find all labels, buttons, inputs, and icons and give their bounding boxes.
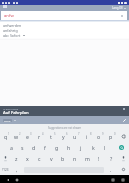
button[interactable]: Clear — [120, 14, 124, 18]
staticText: 6 — [66, 132, 68, 136]
button[interactable]: z — [11, 153, 22, 164]
staticText: s — [21, 144, 24, 151]
staticText: x — [26, 155, 29, 162]
staticText: Input — [4, 119, 11, 122]
staticText: abc Sofort — [3, 33, 21, 38]
button[interactable]: g — [51, 142, 63, 153]
button[interactable]: abc Sofort — [0, 33, 129, 38]
button[interactable]: v — [45, 153, 57, 164]
staticText: m — [85, 155, 90, 162]
staticText: , — [16, 166, 18, 173]
staticText: v — [50, 155, 53, 162]
staticText: l — [104, 144, 106, 151]
button[interactable]: , — [11, 164, 23, 175]
button[interactable]: Shift — [117, 153, 129, 164]
button[interactable]: r — [33, 131, 45, 142]
button[interactable]: m — [81, 153, 93, 164]
button[interactable]: j — [75, 142, 87, 153]
button[interactable]: i — [81, 131, 93, 142]
staticText: 9 — [102, 132, 104, 136]
staticText: anfwerden — [3, 23, 22, 28]
staticText: w — [14, 133, 19, 140]
staticText: ?123 — [2, 168, 9, 172]
button[interactable]: d — [28, 142, 39, 153]
button[interactable]: c — [33, 153, 45, 164]
button[interactable]: s — [17, 142, 28, 153]
staticText: anfahrtg — [3, 28, 18, 33]
staticText: o — [97, 133, 101, 140]
staticText: t — [50, 133, 52, 140]
staticText: 7 — [78, 132, 80, 136]
button[interactable]: a — [6, 142, 17, 153]
staticText: n — [73, 155, 77, 162]
staticText: f — [44, 144, 46, 151]
staticText: z — [15, 155, 18, 162]
button[interactable]: n — [69, 153, 81, 164]
staticText: b — [61, 155, 65, 162]
staticText: anfw — [4, 13, 14, 19]
staticText: k — [92, 144, 95, 151]
button[interactable]: Home — [15, 178, 18, 181]
staticText: p — [109, 133, 113, 140]
staticText: 2 — [19, 132, 21, 136]
staticText: u — [73, 133, 77, 140]
staticText: 8 — [90, 132, 92, 136]
staticText: g — [55, 144, 59, 151]
button[interactable]: anfwerden — [0, 23, 129, 28]
staticText: Suggestions are not shown — [48, 126, 82, 130]
button[interactable]: f — [39, 142, 51, 153]
button[interactable]: l — [99, 142, 111, 153]
button[interactable]: Recents — [111, 178, 114, 181]
button[interactable]: t — [45, 131, 57, 142]
button[interactable]: Back — [6, 178, 9, 181]
staticText: Artikel Name — [3, 107, 19, 110]
button[interactable]: x — [22, 153, 33, 164]
button[interactable]: p — [105, 131, 117, 142]
staticText: 0 — [114, 132, 116, 136]
button[interactable]: Edit — [122, 118, 126, 122]
staticText: r — [38, 133, 41, 140]
staticText: h — [67, 144, 71, 151]
staticText: ! — [98, 155, 100, 162]
staticText: j — [80, 144, 82, 151]
button[interactable]: q — [0, 131, 11, 142]
button[interactable]: Backspace — [117, 131, 129, 142]
button[interactable]: Emoji — [117, 164, 129, 175]
button[interactable]: ?123 — [0, 164, 11, 175]
button[interactable]: b — [57, 153, 69, 164]
staticText: d — [32, 144, 36, 151]
staticText: Auf Fahrplan — [3, 110, 29, 116]
staticText: 3 — [30, 132, 32, 136]
staticText: 1 — [8, 132, 10, 136]
button[interactable]: ! — [93, 153, 105, 164]
button[interactable]: k — [87, 142, 99, 153]
button[interactable]: Shift — [0, 153, 11, 164]
staticText: 4 — [42, 132, 44, 136]
staticText: y — [62, 133, 65, 140]
button[interactable]: h — [63, 142, 75, 153]
button[interactable]: Input — [4, 119, 11, 122]
button[interactable]: anfahrtg — [0, 28, 129, 33]
button[interactable]: w — [11, 131, 22, 142]
button[interactable]: Search — [119, 145, 124, 150]
staticText: i — [86, 133, 88, 140]
staticText: . — [110, 166, 112, 173]
button[interactable]: y — [57, 131, 69, 142]
button[interactable]: e — [22, 131, 33, 142]
staticText: ? — [110, 155, 113, 162]
staticText: e — [26, 133, 29, 140]
staticText: q — [4, 133, 8, 140]
button[interactable]: o — [93, 131, 105, 142]
staticText: c — [38, 155, 41, 162]
staticText: Lang DE — [112, 6, 123, 10]
button[interactable]: ? — [105, 153, 117, 164]
button[interactable]: u — [69, 131, 81, 142]
staticText: 5 — [54, 132, 56, 136]
staticText: a — [10, 144, 13, 151]
button[interactable]: Screenshot — [121, 178, 124, 181]
button[interactable]: . — [105, 164, 117, 175]
